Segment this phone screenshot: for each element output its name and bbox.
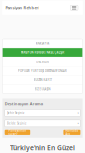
staticText: BÜLTEN KAYIT [33, 78, 51, 82]
staticText: Pansiyon Rehberi [5, 5, 39, 10]
staticText: Haritada Ara [65, 129, 78, 136]
button[interactable]: Haritada Ara [63, 130, 80, 135]
staticText: ANASAYFA [35, 42, 49, 45]
button[interactable]: ANASAYFA [2, 39, 83, 48]
staticText: Belde Seçiniz [7, 122, 26, 125]
staticText: BİZE ULAŞIN [34, 87, 50, 91]
staticText: Pansiyonları Göster [8, 129, 26, 136]
button[interactable]: Belde Seçiniz [5, 120, 80, 127]
staticText: POPÜLER YURT DIŞI DESTİNASYONLAR [18, 69, 67, 73]
button[interactable]: Pansiyonları Göster [5, 130, 30, 135]
staticText: Türkiye'nin En Güzel [10, 143, 75, 152]
button[interactable]: BİZE ULAŞIN [2, 85, 83, 94]
staticText: ▾ [77, 111, 78, 114]
staticText: Destinasyon Arama [5, 101, 43, 106]
button[interactable]: Şehir Seçiniz [5, 109, 80, 116]
staticText: OTEL BLOG [36, 60, 49, 63]
button[interactable]: PANSİYON REHBERİ NASIL ÇALIŞIR [2, 48, 83, 57]
staticText: Şehir Seçiniz [7, 111, 24, 115]
button[interactable]: BÜLTEN KAYIT [2, 76, 83, 84]
button[interactable]: Menu [70, 5, 78, 10]
staticText: PANSİYON REHBERİ NASIL ÇALIŞIR [20, 51, 64, 54]
button[interactable]: POPÜLER YURT DIŞI DESTİNASYONLAR [2, 66, 83, 75]
staticText: ▾ [77, 122, 78, 125]
button[interactable]: OTEL BLOG [2, 57, 83, 66]
